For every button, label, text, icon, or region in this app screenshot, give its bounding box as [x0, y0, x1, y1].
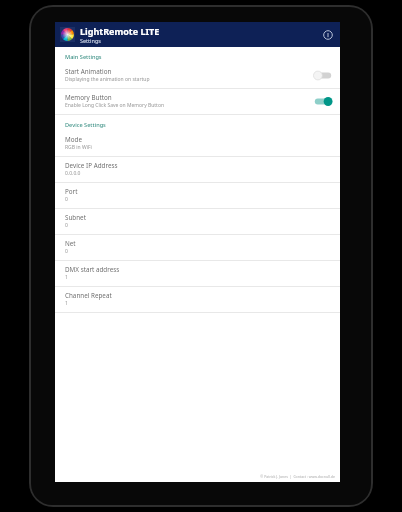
- staticText: LightRemote LITE: [80, 25, 160, 37]
- button[interactable]: Channel Repeat: [55, 287, 340, 312]
- staticText: Net: [65, 239, 76, 248]
- staticText: 0.0.0.0: [65, 170, 81, 177]
- button[interactable]: Mode: [55, 131, 340, 156]
- staticText: 0: [65, 196, 68, 203]
- staticText: Device Settings: [65, 121, 106, 129]
- button[interactable]: Start Animation: [55, 63, 340, 88]
- staticText: © Patrick J. Janes | Contact : www.docnu…: [260, 474, 335, 479]
- button[interactable]: About: [319, 26, 336, 43]
- button[interactable]: Port: [55, 183, 340, 208]
- button[interactable]: Device IP Address: [55, 157, 340, 182]
- staticText: 1: [65, 300, 68, 307]
- staticText: Main Settings: [65, 53, 102, 61]
- staticText: Port: [65, 187, 78, 196]
- staticText: Mode: [65, 135, 82, 144]
- button[interactable]: DMX start address: [55, 261, 340, 286]
- button[interactable]: Memory Button: [55, 89, 340, 114]
- button[interactable]: Subnet: [55, 209, 340, 234]
- staticText: Subnet: [65, 213, 86, 222]
- staticText: Settings: [80, 37, 101, 44]
- staticText: 0: [65, 222, 68, 229]
- staticText: Memory Button: [65, 93, 112, 102]
- button[interactable]: Disabled: [313, 69, 333, 82]
- staticText: DMX start address: [65, 265, 120, 274]
- staticText: Enable Long Click Save on Memory Button: [65, 102, 165, 109]
- staticText: Start Animation: [65, 67, 112, 76]
- staticText: Device IP Address: [65, 161, 118, 170]
- staticText: RGB in WiFi: [65, 144, 92, 151]
- button[interactable]: Enabled: [313, 95, 333, 108]
- staticText: 0: [65, 248, 68, 255]
- staticText: 1: [65, 274, 68, 281]
- staticText: Channel Repeat: [65, 291, 112, 300]
- button[interactable]: Net: [55, 235, 340, 260]
- staticText: Displaying the animation on startup: [65, 76, 150, 83]
